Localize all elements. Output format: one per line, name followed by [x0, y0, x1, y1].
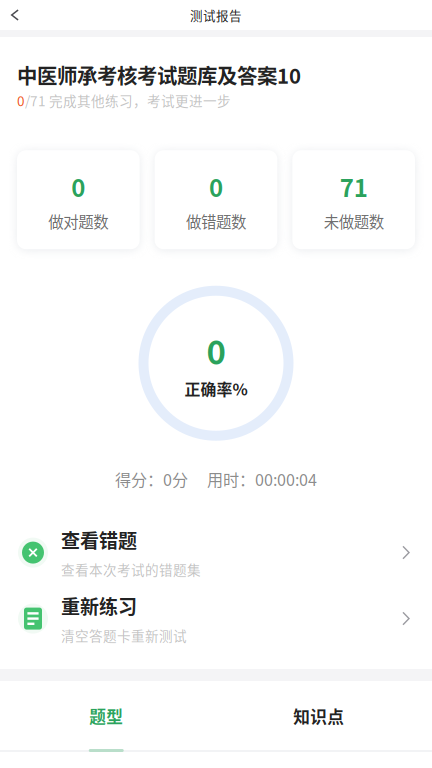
staticText: 中医师承考核考试题库及答案10: [17, 60, 301, 89]
staticText: 正确率%: [184, 377, 247, 400]
staticText: 71: [340, 169, 368, 204]
staticText: 0: [206, 326, 225, 374]
staticText: 未做题数: [324, 210, 384, 232]
button[interactable]: 题型: [0, 681, 212, 752]
staticText: 做对题数: [48, 210, 108, 232]
staticText: 0: [71, 169, 85, 204]
staticText: 得分：0分: [115, 467, 188, 491]
staticText: 重新练习: [61, 592, 137, 619]
staticText: 0: [209, 169, 223, 204]
staticText: 查看错题: [61, 526, 137, 553]
staticText: 用时：00:00:04: [207, 467, 317, 491]
staticText: 题型: [89, 704, 123, 728]
button[interactable]: 知识点: [212, 681, 425, 752]
staticText: 0: [17, 90, 25, 110]
button[interactable]: 查看错题: [0, 520, 432, 586]
staticText: 知识点: [293, 704, 344, 728]
staticText: 清空答题卡重新测试: [61, 625, 187, 645]
staticText: 查看本次考试的错题集: [61, 559, 201, 579]
staticText: 测试报告: [190, 6, 242, 24]
staticText: /71 完成其他练习，考试更进一步: [25, 90, 231, 110]
button[interactable]: 重新练习: [0, 586, 432, 652]
staticText: 做错题数: [186, 210, 246, 232]
button[interactable]: Back: [0, 0, 30, 30]
